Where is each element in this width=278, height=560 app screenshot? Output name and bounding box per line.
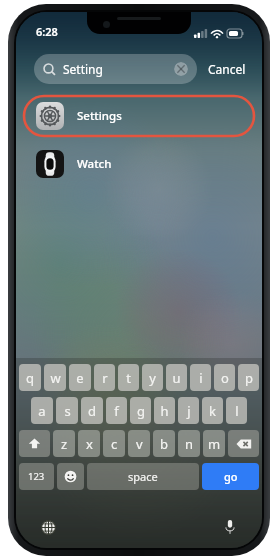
button[interactable]: v — [128, 430, 150, 457]
staticText: q — [26, 369, 34, 387]
button[interactable]: r — [94, 364, 115, 391]
button[interactable]: f — [106, 397, 127, 424]
staticText: m — [208, 435, 221, 453]
button[interactable]: n — [178, 430, 200, 457]
button[interactable]: Clear text — [174, 62, 188, 76]
staticText: go — [224, 469, 238, 484]
staticText: Watch — [77, 156, 112, 172]
staticText: v — [136, 435, 143, 453]
button[interactable]: Setting — [34, 54, 197, 84]
button[interactable]: l — [226, 397, 247, 424]
staticText: z — [61, 435, 68, 453]
button[interactable]: q — [19, 364, 41, 391]
button[interactable]: g — [130, 397, 151, 424]
button[interactable]: Change keyboard language — [37, 516, 59, 538]
staticText: Setting — [63, 61, 103, 77]
staticText: Settings — [77, 108, 122, 124]
button[interactable]: u — [166, 364, 187, 391]
button[interactable]: d — [81, 397, 103, 424]
staticText: h — [160, 402, 169, 420]
staticText: b — [160, 435, 168, 453]
button[interactable]: y — [142, 364, 163, 391]
button[interactable]: x — [78, 430, 100, 457]
button[interactable]: space — [87, 463, 199, 490]
button[interactable]: m — [203, 430, 225, 457]
staticText: d — [88, 402, 96, 420]
button[interactable]: h — [154, 397, 175, 424]
button[interactable]: 123 — [19, 463, 54, 490]
button[interactable]: z — [53, 430, 75, 457]
button[interactable]: o — [214, 364, 235, 391]
staticText: g — [137, 402, 145, 420]
button[interactable]: Emoji — [57, 463, 84, 490]
staticText: a — [38, 402, 46, 420]
staticText: 123 — [28, 470, 45, 483]
staticText: t — [126, 369, 131, 387]
button[interactable]: i — [190, 364, 211, 391]
button[interactable]: Backspace — [228, 430, 259, 457]
staticText: s — [64, 402, 71, 420]
staticText: w — [50, 369, 61, 387]
staticText: e — [76, 369, 84, 387]
button[interactable]: c — [103, 430, 125, 457]
button[interactable]: k — [202, 397, 223, 424]
button[interactable]: w — [44, 364, 66, 391]
staticText: k — [209, 402, 216, 420]
button[interactable]: Settings — [22, 94, 256, 138]
staticText: j — [187, 402, 191, 420]
staticText: c — [111, 435, 118, 453]
staticText: x — [86, 435, 93, 453]
staticText: o — [221, 369, 229, 387]
staticText: Cancel — [208, 61, 246, 77]
staticText: space — [128, 469, 158, 484]
button[interactable]: Cancel — [206, 57, 248, 81]
button[interactable]: j — [178, 397, 199, 424]
staticText: 6:28 — [36, 24, 58, 39]
button[interactable]: Watch — [16, 144, 262, 184]
staticText: n — [185, 435, 194, 453]
button[interactable]: go — [202, 463, 259, 490]
button[interactable]: a — [31, 397, 53, 424]
button[interactable]: t — [118, 364, 139, 391]
button[interactable]: Shift — [19, 430, 50, 457]
button[interactable]: p — [238, 364, 259, 391]
button[interactable]: Dictate — [219, 516, 241, 538]
button[interactable]: b — [153, 430, 175, 457]
staticText: r — [102, 369, 108, 387]
staticText: f — [114, 402, 119, 420]
staticText: l — [235, 402, 239, 420]
staticText: y — [149, 369, 156, 387]
staticText: u — [172, 369, 181, 387]
staticText: i — [199, 369, 203, 387]
staticText: p — [245, 369, 253, 387]
button[interactable]: s — [56, 397, 78, 424]
button[interactable]: e — [69, 364, 91, 391]
